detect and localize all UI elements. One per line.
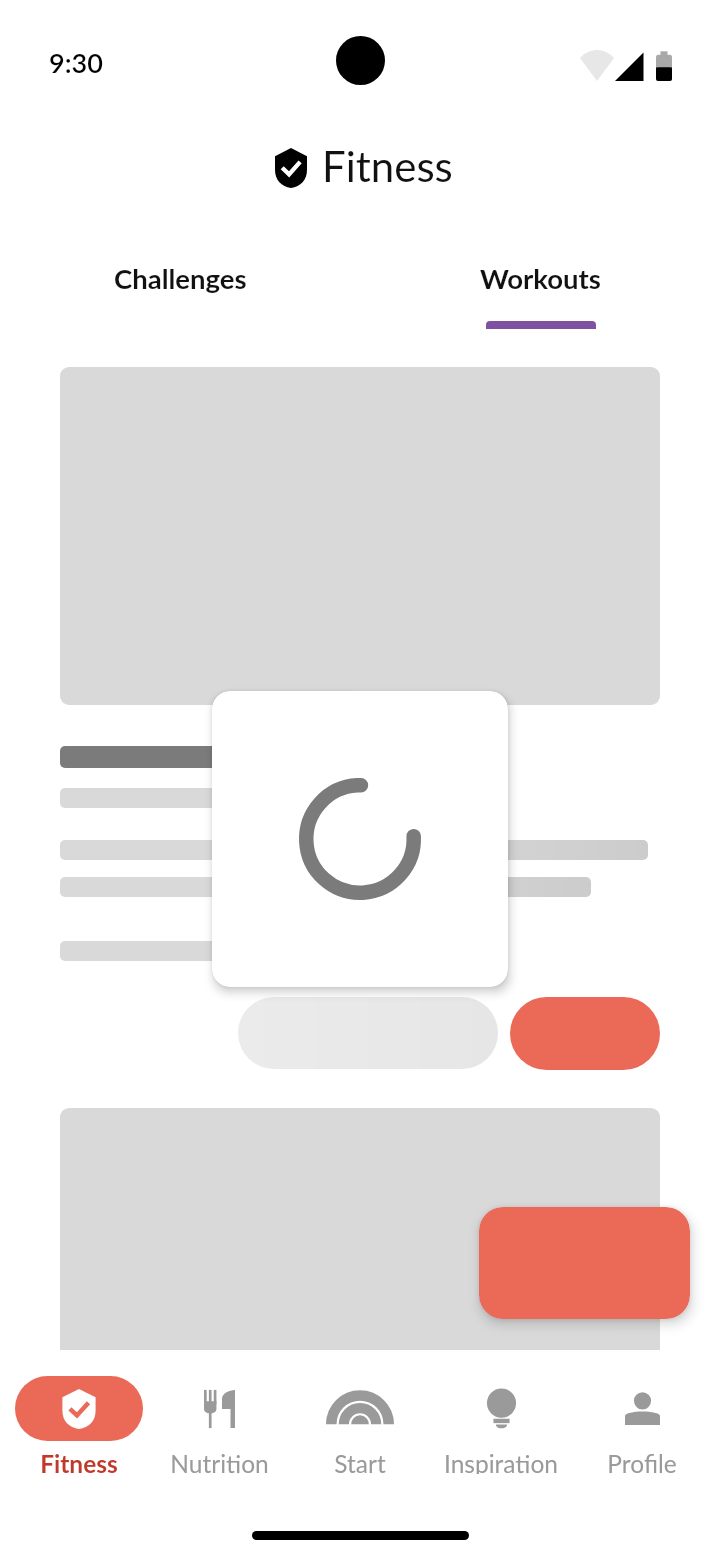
staticText: Workouts (480, 262, 601, 295)
staticText: Start (334, 1449, 386, 1474)
staticText: Inspiration (444, 1449, 558, 1474)
staticText: Nutrition (170, 1449, 269, 1474)
button[interactable]: Start workout (479, 1207, 690, 1319)
staticText: Fitness (40, 1449, 118, 1474)
staticText: Challenges (114, 262, 247, 295)
staticText: Profile (607, 1449, 677, 1474)
button[interactable]: Challenges (0, 250, 360, 320)
button[interactable]: Workouts (360, 250, 720, 328)
button[interactable]: Secondary action (238, 997, 498, 1069)
button[interactable]: Nutrition (149, 1376, 289, 1474)
button[interactable]: Primary action (510, 997, 660, 1070)
staticText: Fitness (322, 141, 453, 191)
staticText: 9:30 (49, 46, 103, 78)
button[interactable]: Profile (571, 1376, 712, 1474)
button[interactable]: Inspiration (430, 1376, 571, 1474)
button[interactable]: Start (289, 1376, 430, 1474)
button[interactable]: Fitness (9, 1376, 149, 1474)
